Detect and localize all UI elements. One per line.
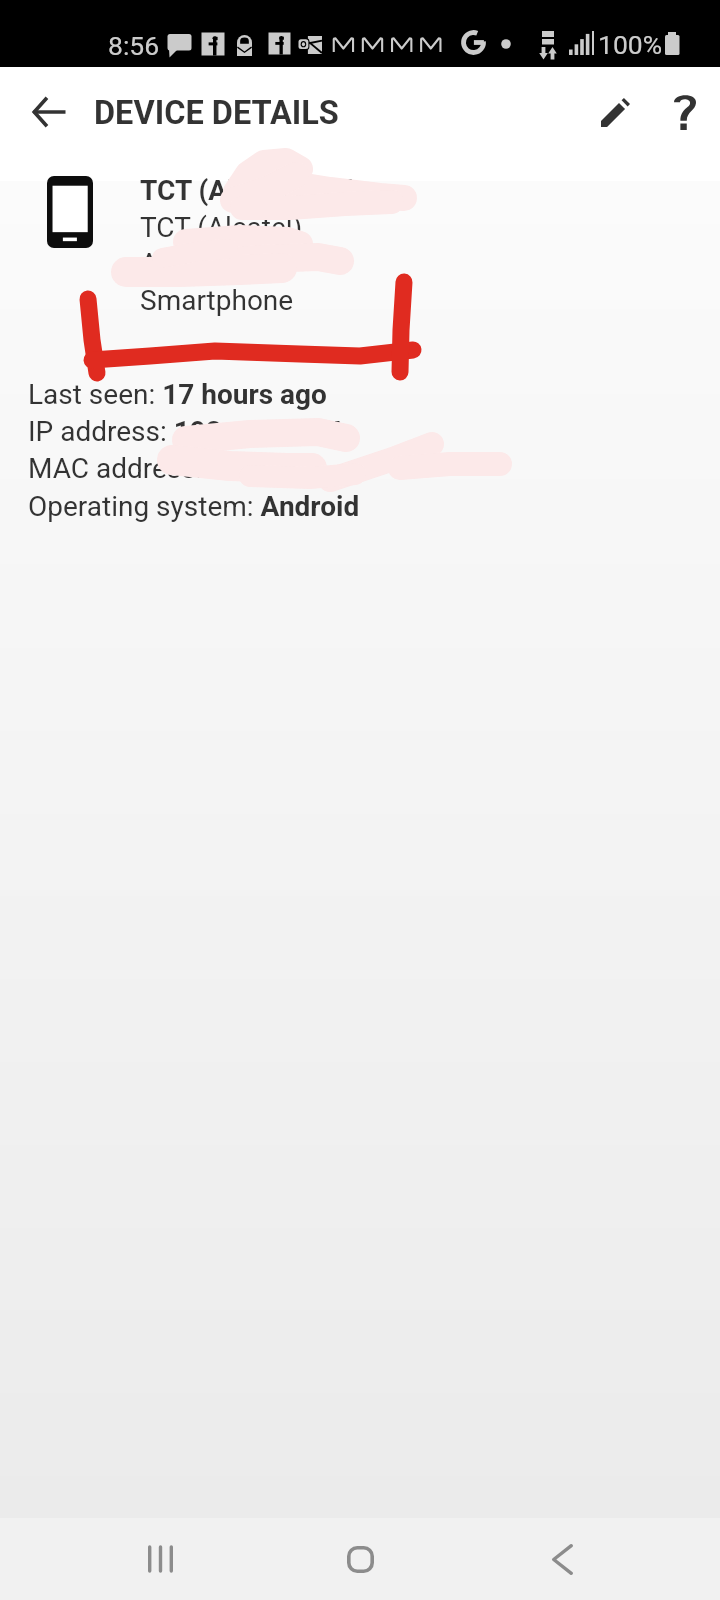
- staticText: 100%: [598, 29, 663, 60]
- staticText: 8:56: [108, 30, 160, 61]
- button[interactable]: Back: [16, 79, 82, 145]
- staticText: DEVICE DETAILS: [94, 94, 339, 132]
- staticText: Last seen: 17 hours ago: [28, 378, 327, 411]
- staticText: Operating system: Android: [28, 490, 360, 523]
- button[interactable]: Edit: [581, 78, 649, 146]
- staticText: Alcatel: [140, 247, 226, 280]
- button[interactable]: Home: [324, 1523, 396, 1595]
- staticText: TCT (Alcatel) Ltd: [140, 174, 354, 207]
- staticText: MAC address: A4:AF:01: [28, 452, 327, 485]
- button[interactable]: Recent apps: [124, 1523, 196, 1595]
- button[interactable]: Help: [651, 78, 719, 146]
- staticText: IP address: 192.168.1.14: [28, 415, 343, 448]
- staticText: Smartphone: [140, 284, 294, 317]
- button[interactable]: Back: [526, 1523, 598, 1595]
- staticText: TCT (Alcatel): [140, 211, 303, 244]
